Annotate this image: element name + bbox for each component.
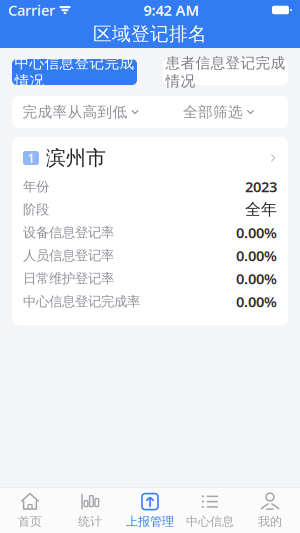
button[interactable]: 1: [23, 143, 277, 173]
staticText: 中心信息登记完成情况: [14, 54, 134, 90]
button[interactable]: 完成率从高到低: [12, 96, 150, 128]
button[interactable]: 中心信息登记完成情况: [12, 59, 137, 85]
button[interactable]: 上报管理: [120, 488, 180, 532]
staticText: 中心信息: [186, 514, 234, 529]
button[interactable]: 患者信息登记完成情况: [163, 59, 288, 85]
staticText: 9:42 AM: [143, 0, 199, 20]
staticText: 中心信息登记完成率: [23, 293, 140, 310]
staticText: 2023: [245, 177, 277, 196]
button[interactable]: 中心信息: [180, 488, 240, 532]
staticText: 日常维护登记率: [23, 270, 114, 287]
staticText: 0.00%: [236, 269, 277, 288]
staticText: 0.00%: [236, 292, 277, 311]
staticText: 滨州市: [46, 146, 106, 170]
button[interactable]: 首页: [0, 488, 60, 532]
button[interactable]: 我的: [240, 488, 300, 532]
button[interactable]: 全部筛选: [150, 96, 288, 128]
staticText: 全部筛选: [183, 103, 243, 121]
staticText: 统计: [78, 514, 102, 529]
staticText: 0.00%: [236, 246, 277, 265]
staticText: 0.00%: [236, 223, 277, 242]
staticText: 年份: [23, 178, 49, 195]
staticText: 上报管理: [126, 514, 174, 529]
staticText: 阶段: [23, 201, 49, 218]
staticText: 全年: [245, 200, 277, 219]
staticText: 患者信息登记完成情况: [165, 54, 285, 90]
staticText: 完成率从高到低: [22, 103, 127, 121]
button[interactable]: 统计: [60, 488, 120, 532]
staticText: 人员信息登记率: [23, 247, 114, 264]
staticText: 首页: [18, 514, 42, 529]
staticText: 区域登记排名: [93, 22, 207, 45]
staticText: Carrier: [8, 0, 55, 20]
staticText: 设备信息登记率: [23, 224, 114, 241]
staticText: 1: [27, 150, 34, 166]
staticText: 我的: [258, 514, 282, 529]
